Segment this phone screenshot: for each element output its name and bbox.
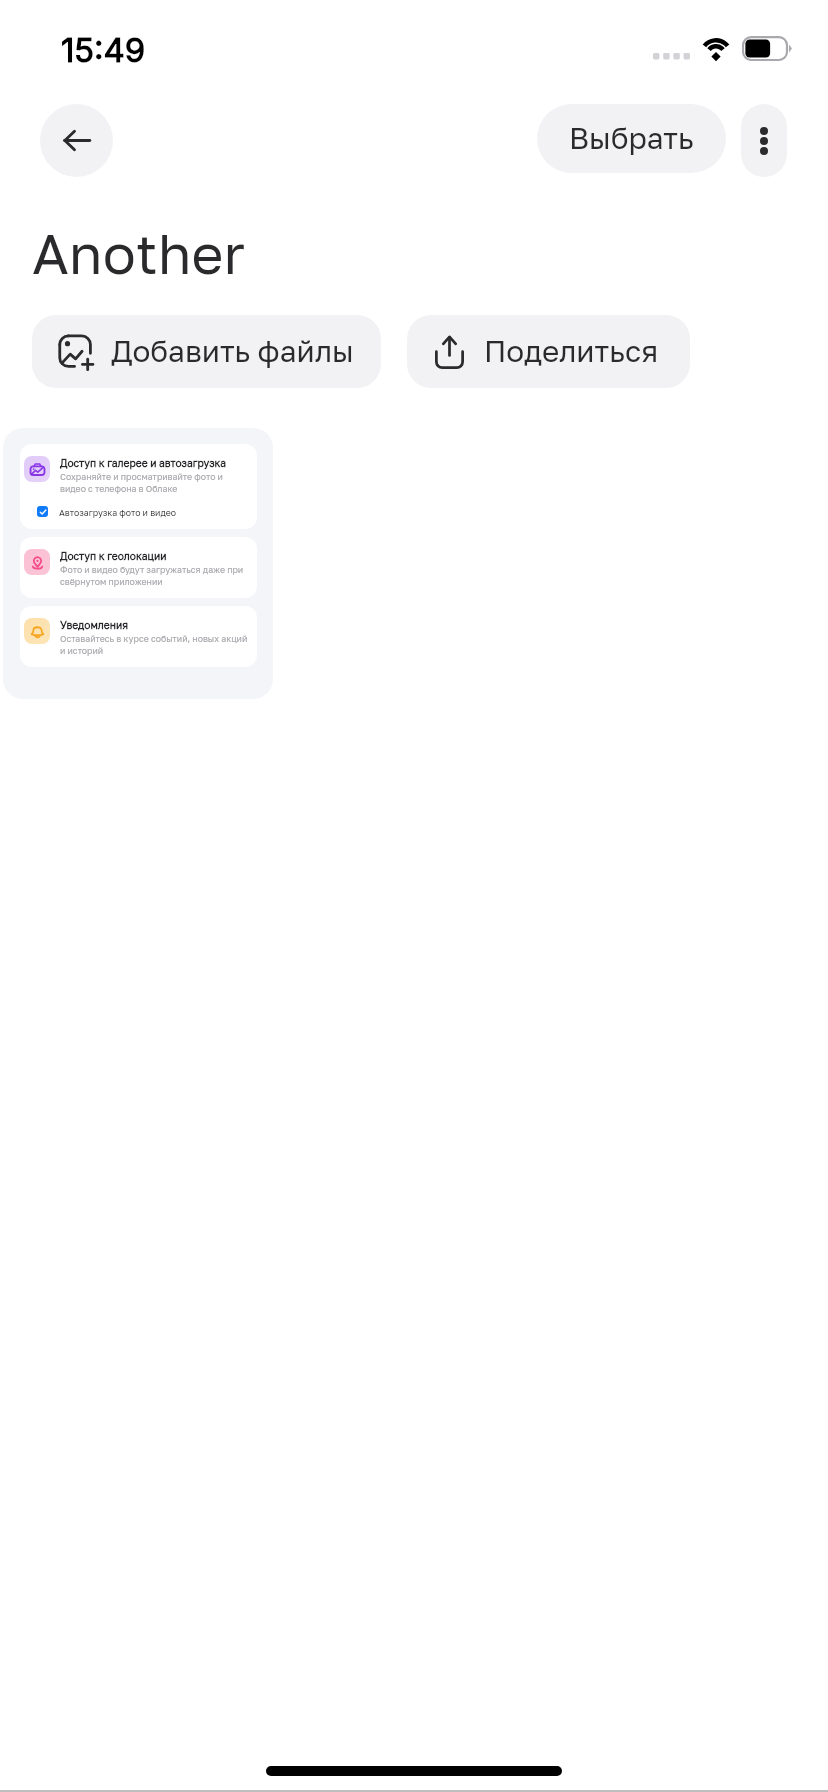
staticText: Выбрать xyxy=(569,123,694,155)
staticText: Оставайтесь в курсе событий, новых акций… xyxy=(60,632,249,656)
staticText: Доступ к геолокации xyxy=(60,549,167,562)
button[interactable]: Доступ к геолокации xyxy=(20,537,257,598)
staticText: Доступ к галерее и автозагрузка xyxy=(60,456,227,469)
staticText: Сохраняйте и просматривайте фото и видео… xyxy=(60,470,249,494)
staticText: 15:49 xyxy=(61,33,146,69)
staticText: Уведомления xyxy=(60,618,129,631)
staticText: Фото и видео будут загружаться даже при … xyxy=(60,563,249,587)
staticText: Поделиться xyxy=(484,336,659,368)
button[interactable]: Уведомления xyxy=(20,606,257,667)
button[interactable]: Доступ к галерее и автозагрузка xyxy=(20,444,257,529)
button[interactable]: Поделиться xyxy=(407,315,690,388)
button[interactable]: Выбрать xyxy=(537,104,726,173)
staticText: Добавить файлы xyxy=(111,336,354,368)
staticText: Another xyxy=(32,223,245,285)
button[interactable]: More options xyxy=(741,104,787,177)
button[interactable]: Back xyxy=(40,104,113,177)
button[interactable]: Добавить файлы xyxy=(32,315,381,388)
staticText: Автозагрузка фото и видео xyxy=(59,505,177,518)
